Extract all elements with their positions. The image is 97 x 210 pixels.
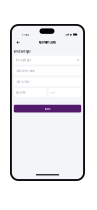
staticText: Card number: [15, 80, 30, 83]
button[interactable]: Back: [15, 39, 21, 46]
staticText: 11:42: [21, 33, 29, 36]
staticText: Expiry date: [15, 91, 26, 94]
button[interactable]: ADD: [14, 105, 81, 112]
staticText: ADD NEW CARD: [39, 41, 56, 44]
staticText: Select card type: [15, 58, 32, 62]
staticText: Cardholder name: [15, 69, 35, 73]
staticText: ADD: [44, 107, 50, 110]
staticText: CVV: [50, 91, 56, 94]
staticText: Select card type: [14, 50, 31, 53]
